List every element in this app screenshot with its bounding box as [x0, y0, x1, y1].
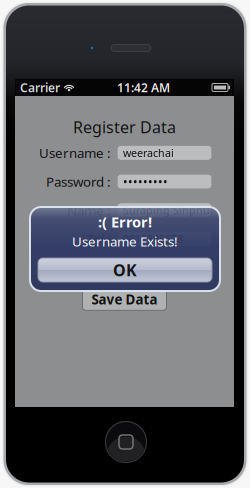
- staticText: weerachai@mail.com: [117, 261, 224, 275]
- staticText: OK: [113, 259, 137, 281]
- staticText: Suraping Sinphun: [123, 203, 217, 217]
- staticText: 11:42 AM: [117, 79, 170, 95]
- staticText: Name :: [67, 201, 111, 219]
- staticText: •••••••••: [123, 174, 168, 189]
- button[interactable]: Save Data: [82, 288, 166, 310]
- staticText: 0812345678: [123, 232, 183, 246]
- staticText: Username Exists!: [72, 232, 178, 250]
- button[interactable]: OK: [38, 258, 212, 282]
- staticText: Password :: [46, 173, 111, 190]
- button[interactable]: Home: [104, 420, 148, 464]
- staticText: Email :: [72, 259, 111, 276]
- staticText: Carrier: [20, 79, 60, 95]
- staticText: Username :: [39, 144, 111, 162]
- staticText: Tel :: [87, 230, 111, 248]
- staticText: Save Data: [91, 290, 157, 308]
- staticText: weerachai: [123, 146, 174, 160]
- staticText: Register Data: [73, 116, 176, 138]
- staticText: :( Error!: [98, 212, 152, 231]
